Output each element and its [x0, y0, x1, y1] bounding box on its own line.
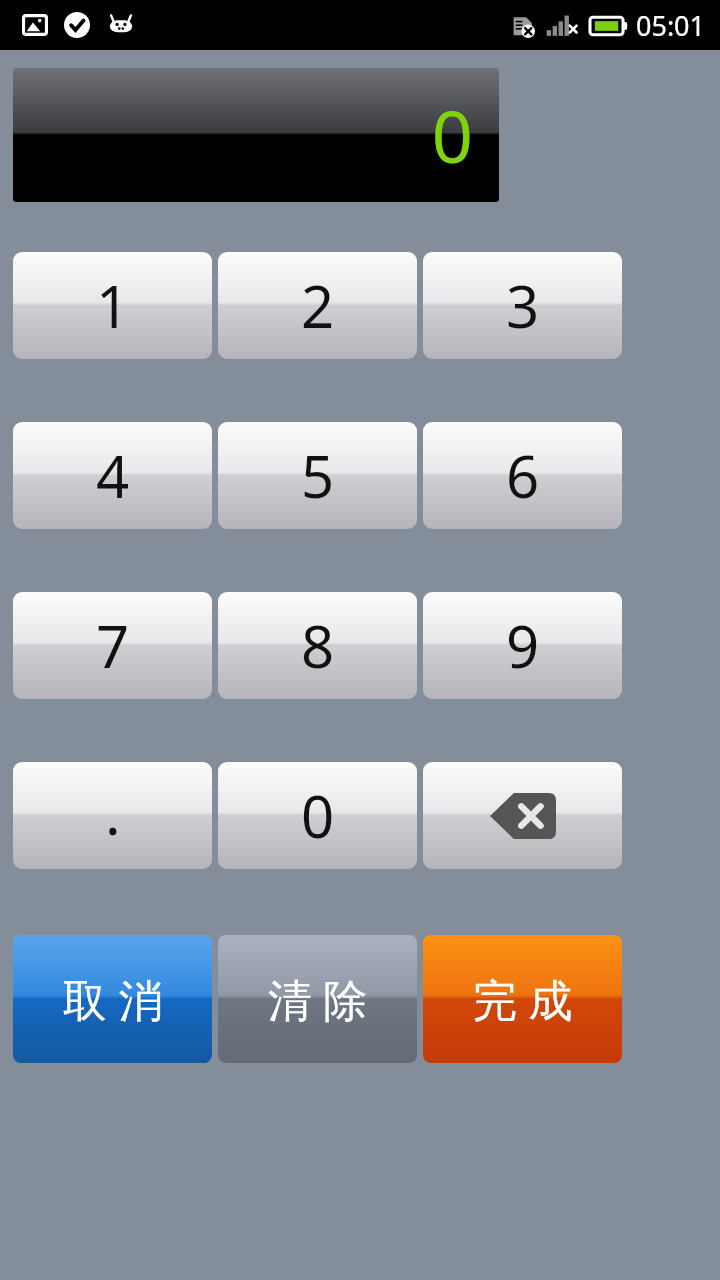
- staticText: 6: [506, 436, 540, 515]
- staticText: 7: [96, 606, 130, 685]
- button[interactable]: 3: [423, 252, 622, 359]
- button[interactable]: 5: [218, 422, 417, 529]
- staticText: 0: [301, 776, 335, 855]
- staticText: 1: [96, 266, 130, 345]
- staticText: 4: [96, 436, 130, 515]
- staticText: 9: [506, 606, 540, 685]
- staticText: 清 除: [268, 969, 368, 1029]
- button[interactable]: Backspace: [423, 762, 622, 869]
- button[interactable]: 清 除: [218, 935, 417, 1063]
- button[interactable]: 2: [218, 252, 417, 359]
- staticText: 5: [301, 436, 335, 515]
- staticText: 2: [301, 266, 335, 345]
- button[interactable]: 6: [423, 422, 622, 529]
- button[interactable]: 4: [13, 422, 212, 529]
- button[interactable]: 1: [13, 252, 212, 359]
- staticText: 05:01: [636, 7, 706, 44]
- button[interactable]: 8: [218, 592, 417, 699]
- staticText: .: [105, 773, 121, 852]
- button[interactable]: .: [13, 762, 212, 869]
- staticText: 8: [301, 606, 335, 685]
- staticText: 取 消: [63, 969, 163, 1029]
- staticText: 3: [506, 266, 540, 345]
- button[interactable]: 9: [423, 592, 622, 699]
- staticText: 完 成: [473, 969, 573, 1029]
- button[interactable]: 7: [13, 592, 212, 699]
- button[interactable]: 取 消: [13, 935, 212, 1063]
- button[interactable]: 0: [218, 762, 417, 869]
- staticText: 0: [431, 86, 473, 184]
- button[interactable]: 完 成: [423, 935, 622, 1063]
